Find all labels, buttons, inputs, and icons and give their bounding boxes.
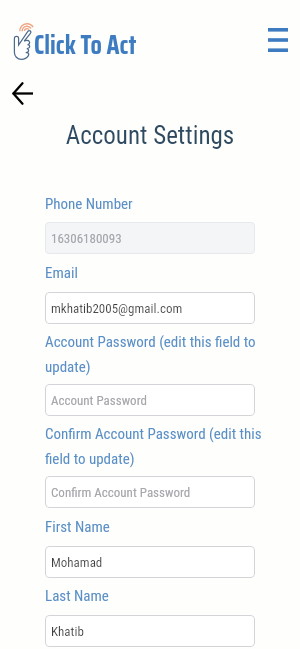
staticText: 16306180093 <box>51 231 122 246</box>
staticText: Mohamad <box>51 555 103 570</box>
button[interactable]: mkhatib2005@gmail.com <box>45 292 255 324</box>
staticText: Account Settings <box>0 121 300 150</box>
staticText: Last Name <box>45 587 300 605</box>
staticText: Email <box>45 264 300 282</box>
staticText: Confirm Account Password (edit this fiel… <box>45 425 300 467</box>
staticText: Account Password (edit this field to upd… <box>45 333 300 375</box>
button[interactable]: Account Password <box>45 384 255 416</box>
staticText: Khatib <box>51 624 84 639</box>
staticText: mkhatib2005@gmail.com <box>51 301 183 316</box>
button[interactable]: Confirm Account Password <box>45 476 255 508</box>
staticText: Account Password <box>51 393 147 408</box>
staticText: Click To Act <box>34 24 137 65</box>
button[interactable]: Menu <box>262 24 294 56</box>
button[interactable]: Mohamad <box>45 546 255 578</box>
staticText: First Name <box>45 518 300 536</box>
button[interactable]: Back <box>12 82 33 105</box>
button[interactable]: Khatib <box>45 615 255 647</box>
button[interactable]: 16306180093 <box>45 222 255 254</box>
staticText: Phone Number <box>45 195 300 213</box>
staticText: Confirm Account Password <box>51 485 191 500</box>
